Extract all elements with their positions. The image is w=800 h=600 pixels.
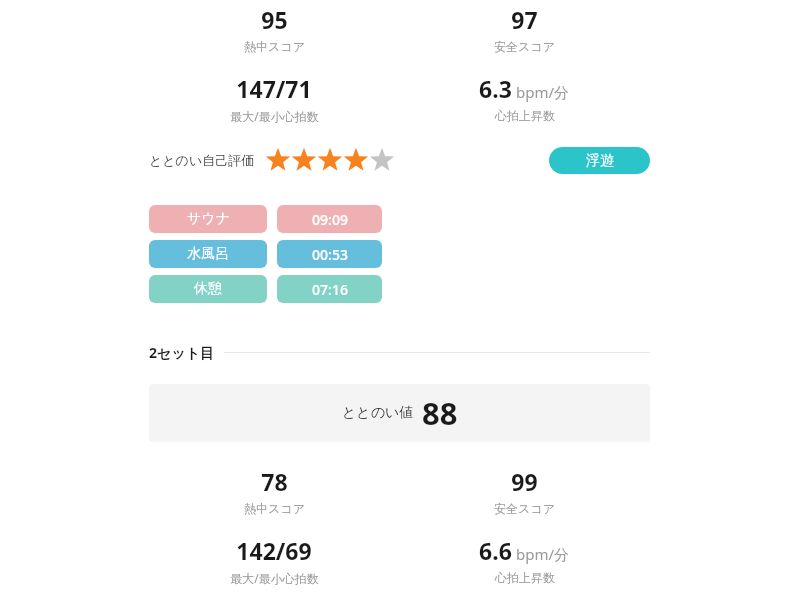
- button[interactable]: 09:09: [277, 205, 382, 233]
- staticText: 熱中スコア: [244, 501, 305, 516]
- staticText: 142/69: [236, 535, 312, 566]
- button[interactable]: ととのい値: [149, 384, 650, 442]
- staticText: 浮遊: [586, 152, 614, 170]
- staticText: bpm/分: [516, 544, 570, 564]
- staticText: 心拍上昇数: [495, 108, 555, 123]
- staticText: 休憩: [194, 280, 222, 298]
- button[interactable]: サウナ: [149, 205, 267, 233]
- staticText: 97: [511, 4, 538, 35]
- button[interactable]: [265, 147, 395, 173]
- button[interactable]: 浮遊: [549, 147, 650, 174]
- staticText: 心拍上昇数: [495, 570, 555, 585]
- staticText: 安全スコア: [494, 501, 555, 516]
- staticText: 安全スコア: [494, 39, 555, 54]
- staticText: 00:53: [312, 245, 348, 264]
- staticText: 熱中スコア: [244, 39, 305, 54]
- button[interactable]: 07:16: [277, 275, 382, 303]
- staticText: 最大/最小心拍数: [230, 108, 319, 124]
- staticText: 88: [422, 392, 458, 434]
- staticText: ととのい値: [342, 404, 414, 422]
- staticText: 6.6: [479, 535, 512, 566]
- staticText: 2セット目: [149, 343, 214, 362]
- staticText: ととのい自己評価: [149, 152, 255, 168]
- staticText: 147/71: [236, 73, 312, 104]
- staticText: 最大/最小心拍数: [230, 570, 319, 586]
- staticText: 95: [261, 4, 288, 35]
- staticText: 99: [511, 466, 538, 497]
- button[interactable]: 水風呂: [149, 240, 267, 268]
- staticText: 78: [261, 466, 288, 497]
- staticText: 水風呂: [187, 245, 229, 263]
- button[interactable]: 00:53: [277, 240, 382, 268]
- staticText: 07:16: [312, 280, 348, 299]
- staticText: サウナ: [187, 210, 230, 228]
- staticText: 09:09: [312, 210, 348, 229]
- staticText: 6.3: [479, 73, 512, 104]
- button[interactable]: 休憩: [149, 275, 267, 303]
- staticText: bpm/分: [516, 82, 570, 102]
